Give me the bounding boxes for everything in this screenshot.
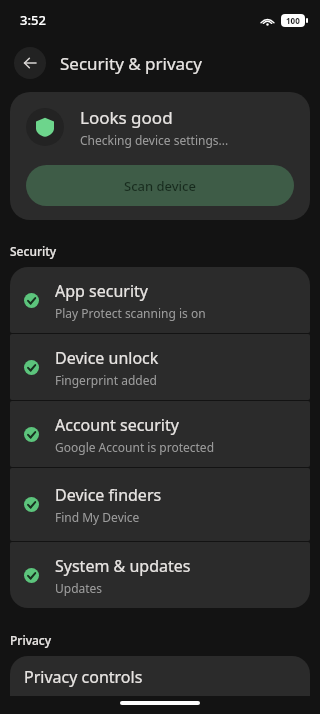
button[interactable]: Privacy controls bbox=[10, 656, 310, 696]
staticText: 3:52 bbox=[20, 11, 46, 29]
button[interactable]: Account security bbox=[10, 401, 310, 467]
staticText: Looks good bbox=[80, 106, 173, 129]
staticText: 100 bbox=[286, 15, 300, 26]
staticText: Security bbox=[10, 243, 57, 259]
staticText: Account security bbox=[55, 414, 179, 436]
staticText: Privacy bbox=[10, 632, 52, 648]
button[interactable]: App security bbox=[10, 267, 310, 333]
staticText: Scan device bbox=[124, 177, 196, 195]
staticText: Privacy controls bbox=[24, 666, 143, 688]
button[interactable]: Device unlock bbox=[10, 334, 310, 400]
staticText: Device unlock bbox=[55, 347, 159, 369]
button[interactable]: Device finders bbox=[10, 468, 310, 541]
staticText: Play Protect scanning is on bbox=[55, 305, 206, 321]
staticText: Fingerprint added bbox=[55, 372, 157, 388]
staticText: App security bbox=[55, 280, 148, 302]
staticText: Security & privacy bbox=[60, 52, 202, 75]
staticText: Google Account is protected bbox=[55, 439, 215, 455]
button[interactable]: Scan device bbox=[26, 165, 294, 206]
button[interactable]: System & updates bbox=[10, 542, 310, 608]
staticText: Updates bbox=[55, 580, 103, 596]
button[interactable]: Back bbox=[14, 47, 46, 79]
staticText: Checking device settings... bbox=[80, 132, 229, 148]
staticText: System & updates bbox=[55, 555, 191, 577]
staticText: Device finders bbox=[55, 484, 162, 506]
staticText: Find My Device bbox=[55, 509, 140, 525]
